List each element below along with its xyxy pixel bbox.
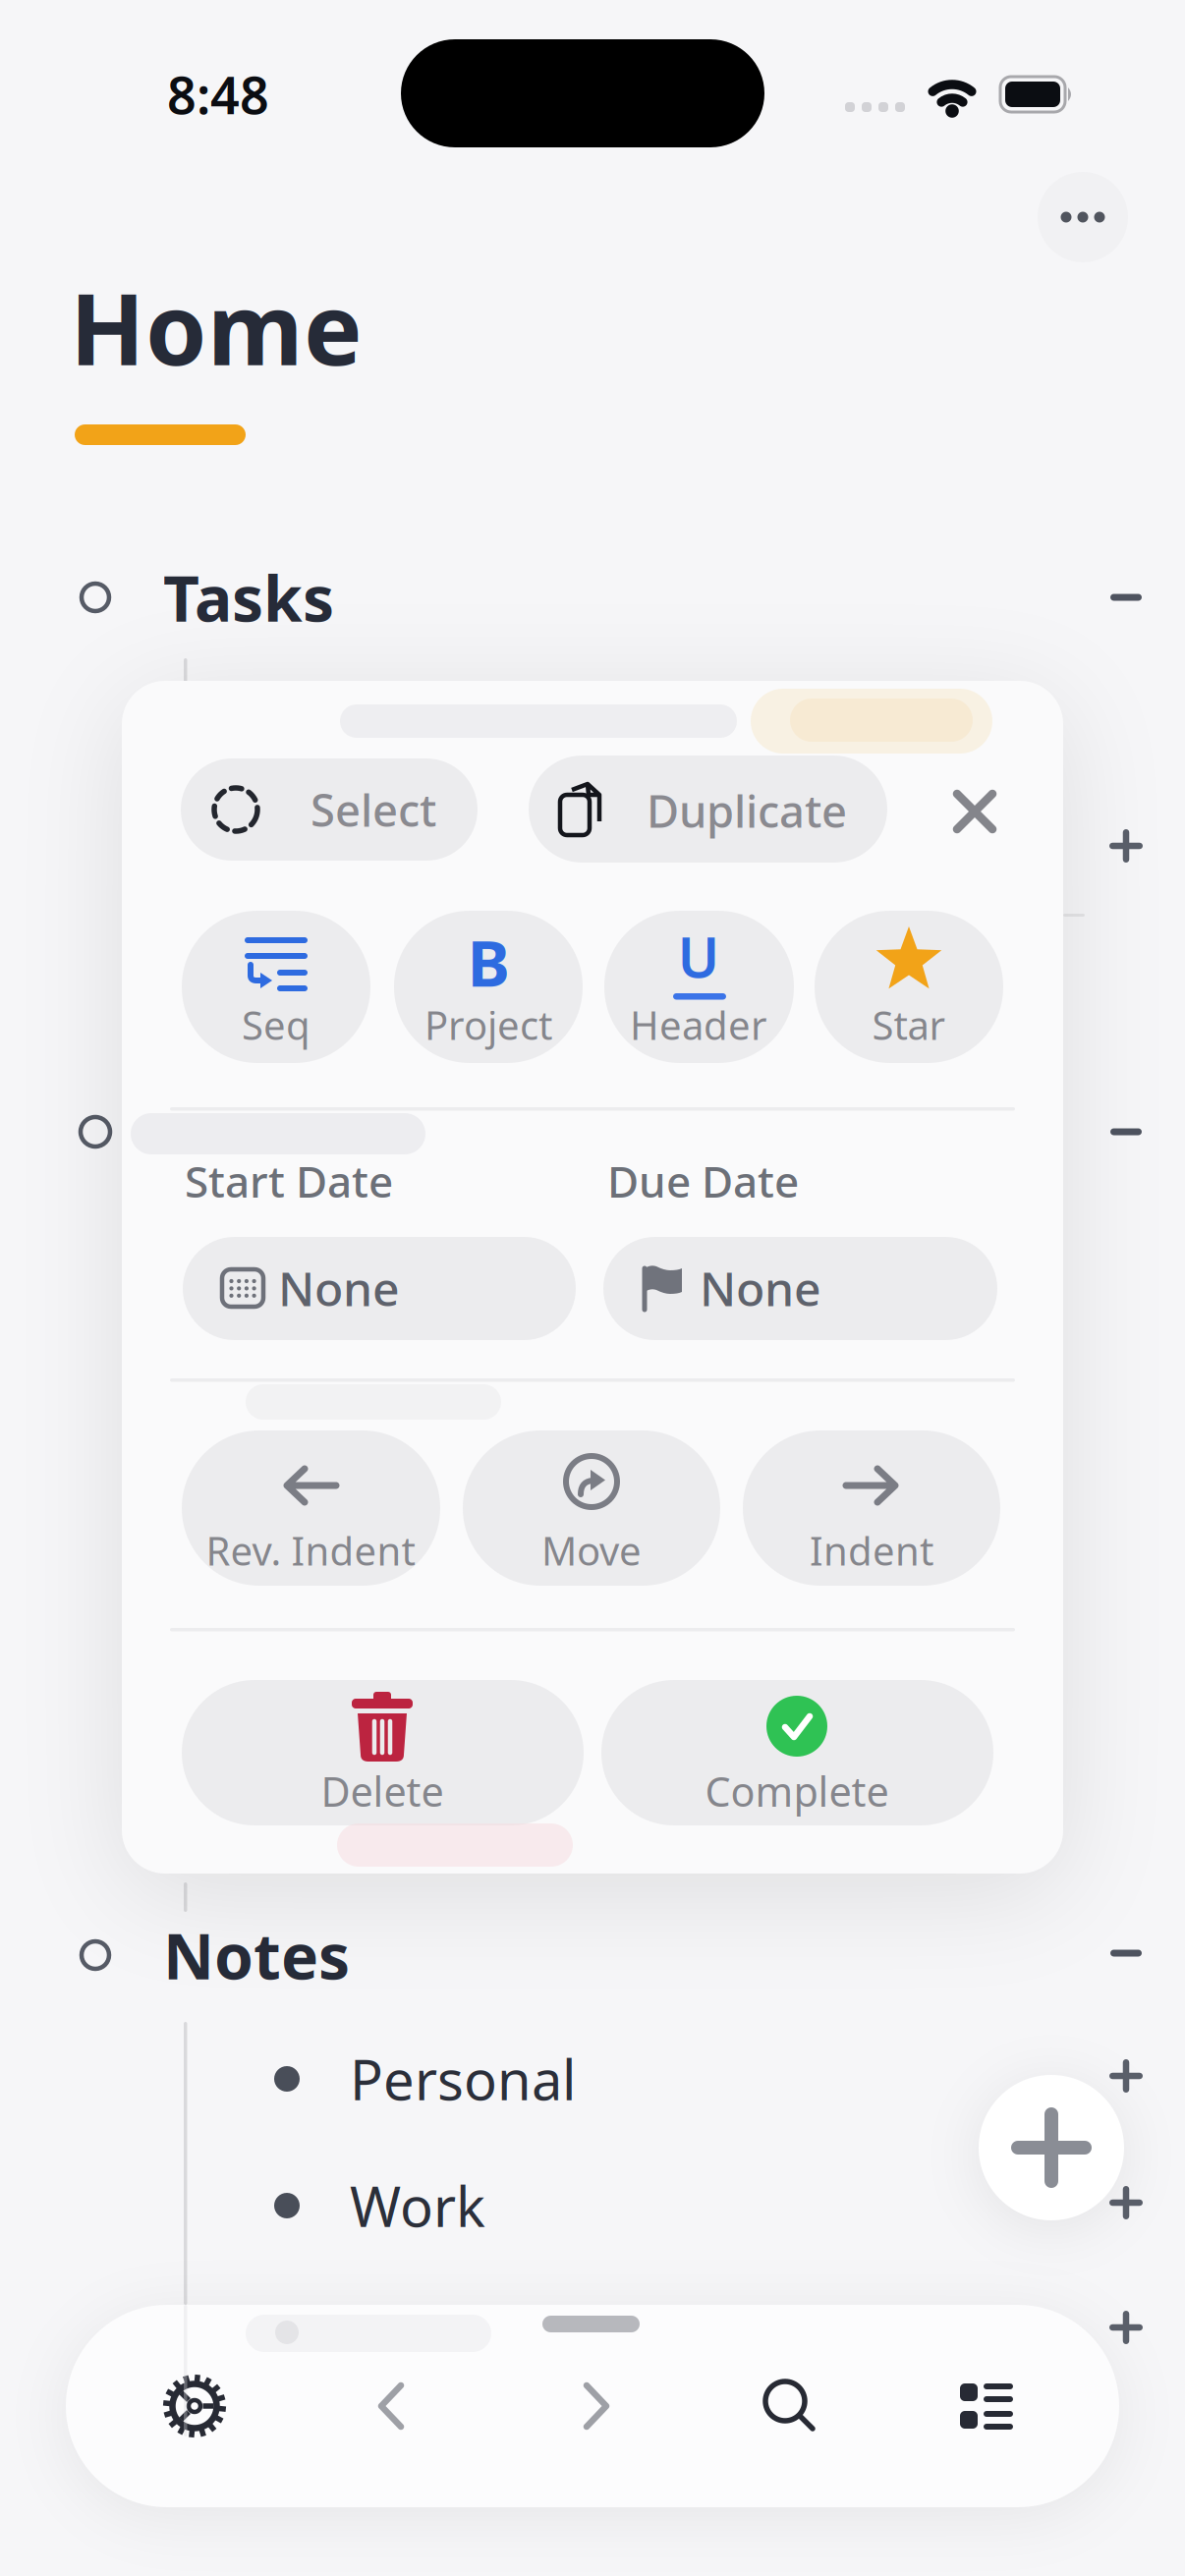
- staticText: None: [278, 1257, 400, 1319]
- staticText: Project: [424, 999, 552, 1051]
- button[interactable]: Add item: [1095, 2044, 1157, 2107]
- button[interactable]: Add item: [1095, 814, 1157, 877]
- button[interactable]: Personal: [261, 2036, 949, 2122]
- staticText: U: [677, 918, 720, 993]
- button[interactable]: Start date: none: [183, 1237, 576, 1340]
- staticText: Move: [541, 1524, 642, 1576]
- staticText: Delete: [321, 1764, 444, 1818]
- staticText: 8:48: [167, 60, 269, 128]
- button[interactable]: Move: [463, 1430, 720, 1586]
- button[interactable]: Add item: [1095, 2171, 1157, 2234]
- button[interactable]: Due date: none: [603, 1237, 997, 1340]
- staticText: Indent: [810, 1524, 933, 1576]
- button[interactable]: Delete: [182, 1680, 584, 1825]
- staticText: Home: [70, 262, 363, 392]
- staticText: Personal: [350, 2042, 576, 2115]
- button[interactable]: Collapse: [1095, 566, 1157, 629]
- button[interactable]: Search: [743, 2359, 837, 2453]
- button[interactable]: Select: [181, 758, 478, 861]
- staticText: Start Date: [185, 1152, 393, 1210]
- button[interactable]: Rev. Indent: [182, 1430, 440, 1586]
- staticText: Select: [310, 780, 436, 839]
- button[interactable]: Add item: [1095, 2296, 1157, 2359]
- button[interactable]: Notes: [59, 1911, 943, 1999]
- button[interactable]: Tasks: [59, 553, 943, 642]
- staticText: Tasks: [163, 556, 334, 639]
- staticText: Notes: [163, 1913, 350, 1997]
- button[interactable]: Collapse: [1095, 1922, 1157, 1985]
- button[interactable]: B: [394, 911, 583, 1063]
- staticText: Seq: [242, 999, 310, 1051]
- staticText: B: [467, 919, 509, 1004]
- button[interactable]: Back: [347, 2362, 435, 2450]
- button[interactable]: Indent: [743, 1430, 1000, 1586]
- button[interactable]: Close: [931, 767, 1019, 856]
- button[interactable]: More: [1038, 172, 1128, 262]
- button[interactable]: Duplicate: [529, 756, 887, 863]
- staticText: Duplicate: [647, 781, 847, 840]
- button[interactable]: Forward: [552, 2362, 641, 2450]
- staticText: Rev. Indent: [206, 1524, 415, 1576]
- button[interactable]: Work: [261, 2162, 949, 2249]
- button[interactable]: Collapse: [1095, 1100, 1157, 1163]
- staticText: Due Date: [607, 1152, 799, 1210]
- button[interactable]: Settings: [145, 2357, 244, 2455]
- staticText: Complete: [705, 1764, 889, 1818]
- staticText: Work: [350, 2169, 485, 2242]
- button[interactable]: Complete: [601, 1680, 993, 1825]
- button[interactable]: Outline view: [943, 2359, 1038, 2453]
- staticText: None: [700, 1257, 821, 1319]
- button[interactable]: Star: [815, 911, 1003, 1063]
- staticText: Star: [872, 999, 946, 1051]
- staticText: Header: [630, 999, 767, 1051]
- button[interactable]: Seq: [182, 911, 370, 1063]
- button[interactable]: U: [604, 911, 794, 1063]
- button[interactable]: New item: [979, 2075, 1124, 2220]
